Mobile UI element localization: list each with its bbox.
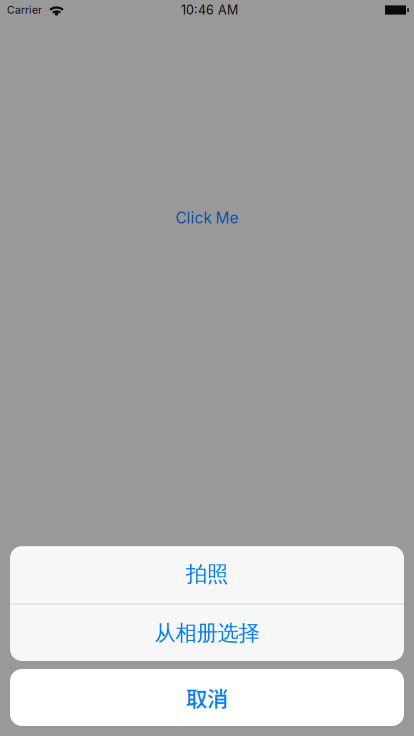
staticText: 10:46 AM bbox=[181, 2, 238, 18]
button[interactable]: Click Me bbox=[137, 205, 277, 231]
staticText: 从相册选择 bbox=[154, 620, 259, 646]
staticText: 拍照 bbox=[186, 561, 228, 587]
button[interactable]: 从相册选择 bbox=[10, 605, 404, 662]
staticText: Click Me bbox=[175, 209, 238, 227]
button[interactable]: 拍照 bbox=[10, 546, 404, 603]
button[interactable]: 取消 bbox=[10, 669, 404, 726]
staticText: 取消 bbox=[186, 682, 228, 713]
staticText: Carrier bbox=[7, 4, 42, 16]
